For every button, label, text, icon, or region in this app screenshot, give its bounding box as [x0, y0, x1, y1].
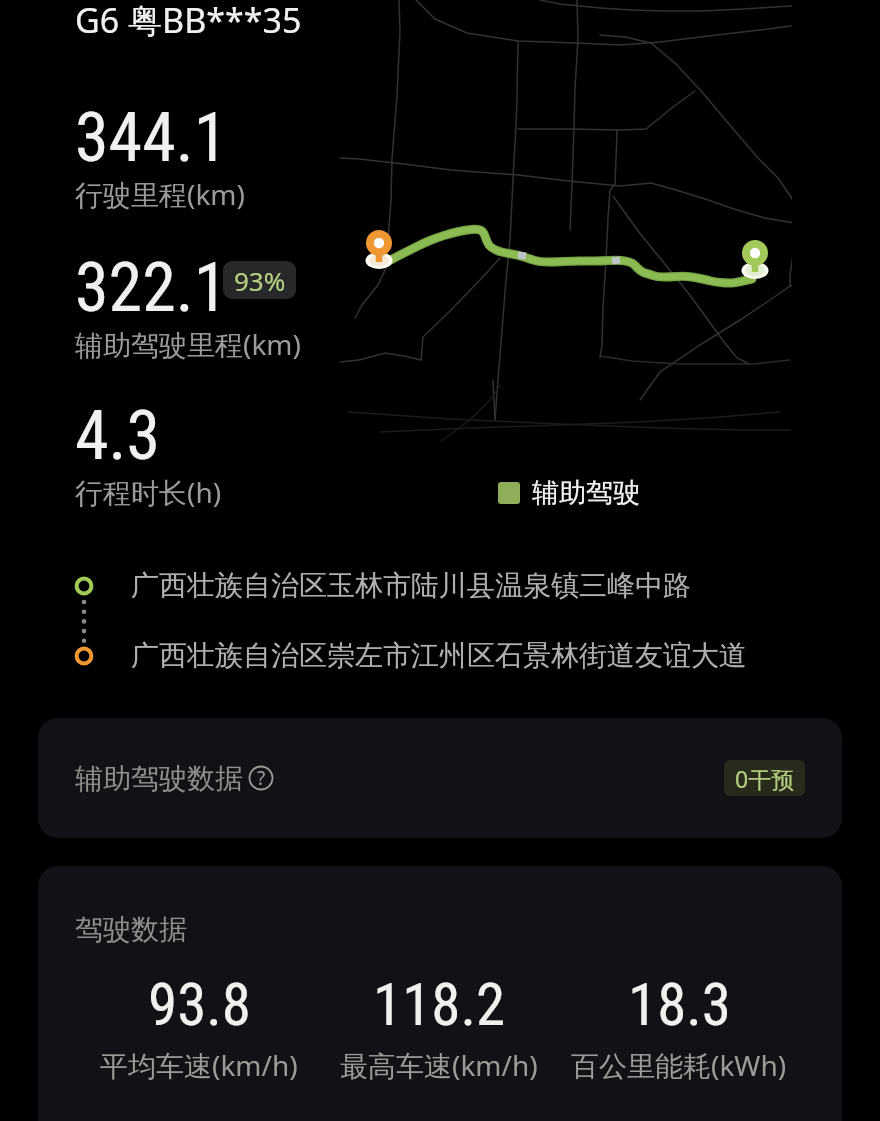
staticText: 93.8 [148, 970, 251, 1039]
staticText: ? [257, 765, 266, 789]
staticText: 百公里能耗(kWh) [571, 1046, 787, 1084]
staticText: 广西壮族自治区崇左市江州区石景林街道友谊大道 [131, 638, 747, 673]
staticText: 辅助驾驶里程(km) [75, 325, 301, 363]
staticText: 93% [234, 263, 286, 298]
staticText: 322.1 [75, 248, 228, 328]
staticText: 驾驶数据 [75, 912, 187, 947]
staticText: 辅助驾驶数据 [75, 761, 243, 796]
staticText: G6 粤BB***35 [75, 0, 302, 43]
staticText: 344.1 [75, 98, 228, 178]
staticText: 辅助驾驶 [532, 476, 640, 510]
staticText: 0干预 [735, 763, 795, 794]
button[interactable]: 帮助 [249, 766, 273, 790]
staticText: 4.3 [75, 396, 161, 476]
staticText: 最高车速(km/h) [340, 1046, 538, 1084]
staticText: 平均车速(km/h) [100, 1046, 298, 1084]
staticText: 广西壮族自治区玉林市陆川县温泉镇三峰中路 [131, 568, 691, 603]
button[interactable]: 辅助驾驶数据 [38, 718, 842, 838]
button[interactable]: 行程地图 [0, 0, 792, 442]
staticText: 18.3 [628, 970, 731, 1039]
staticText: 118.2 [373, 970, 506, 1039]
staticText: 行程时长(h) [75, 473, 222, 511]
staticText: 行驶里程(km) [75, 175, 245, 213]
button[interactable]: 驾驶数据 [38, 866, 842, 1121]
